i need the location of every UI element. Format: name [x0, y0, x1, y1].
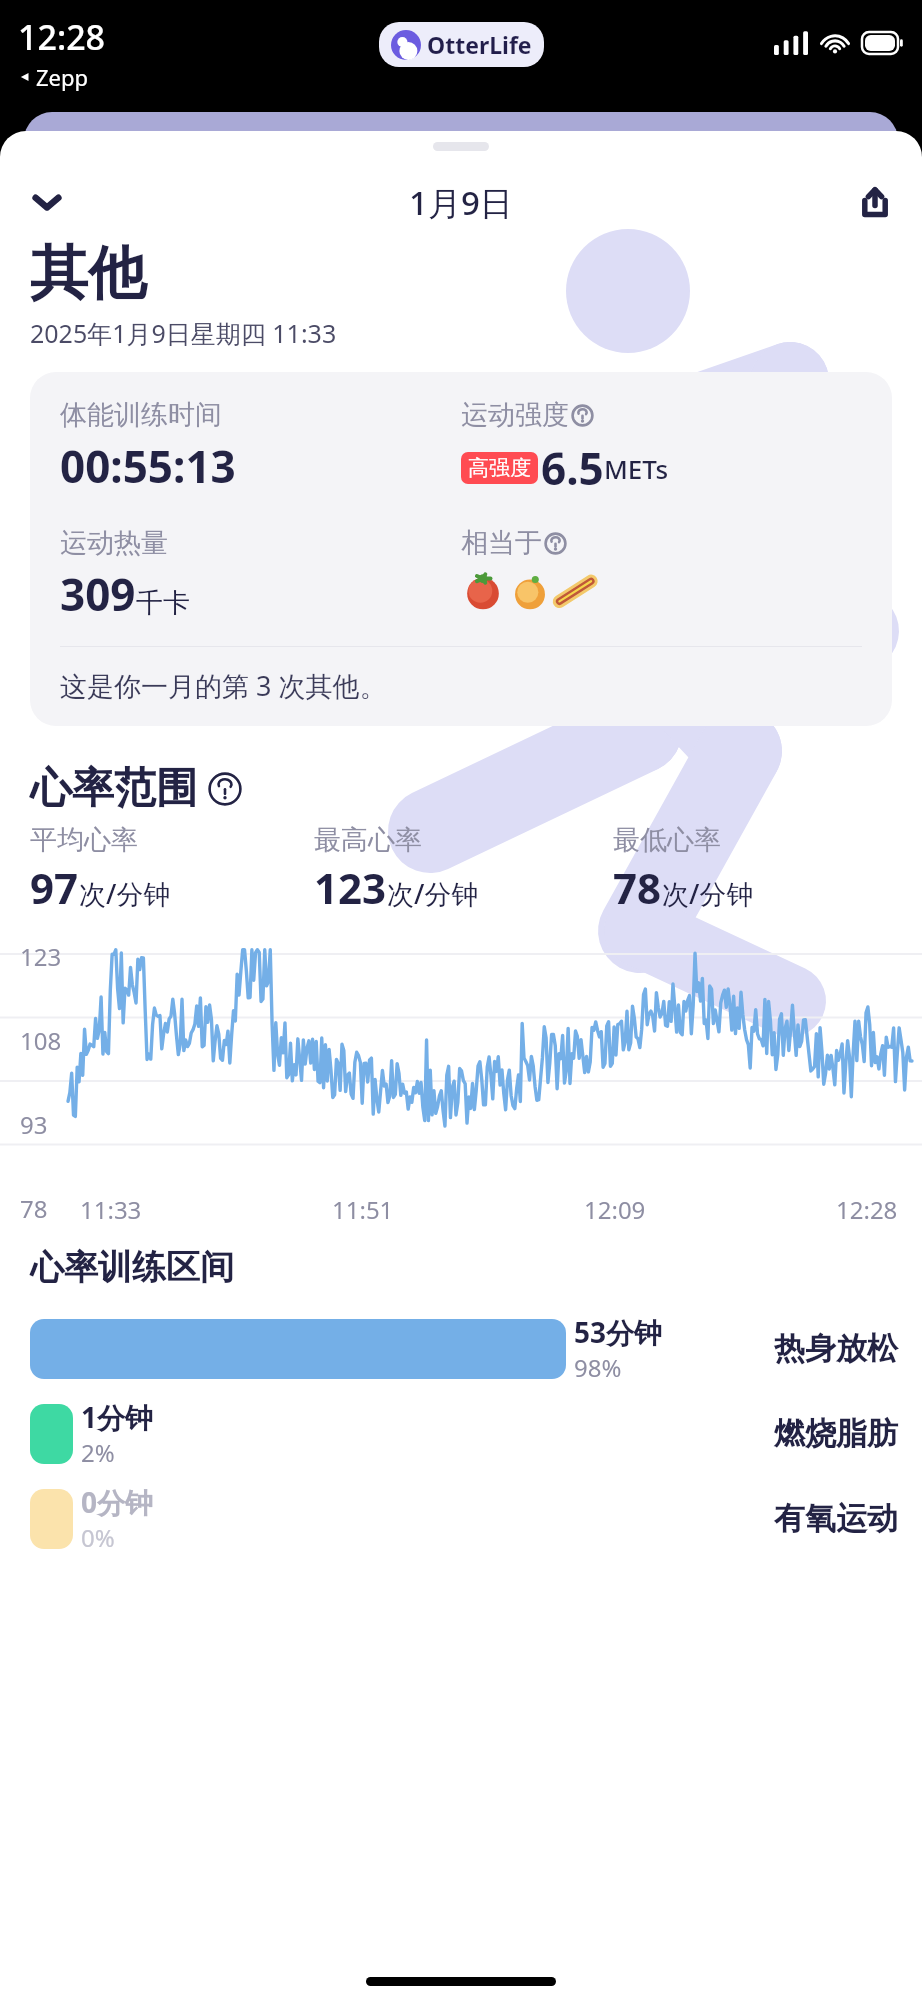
staticText: 12:09 — [584, 1193, 646, 1226]
staticText: 1月9日 — [409, 180, 513, 225]
staticText: 0分钟 — [81, 1483, 154, 1521]
staticText: 0% — [81, 1521, 115, 1554]
staticText: 53分钟 — [574, 1313, 663, 1351]
staticText: 309 — [60, 564, 136, 624]
staticText: 12:28 — [836, 1193, 898, 1226]
staticText: 运动强度 — [461, 398, 569, 432]
staticText: 最低心率 — [613, 823, 721, 857]
staticText: 最高心率 — [314, 823, 422, 857]
staticText: 78 — [613, 859, 662, 916]
button[interactable]: 0分钟 — [30, 1483, 898, 1554]
staticText: 00:55:13 — [60, 436, 236, 496]
staticText: METs — [604, 451, 669, 486]
staticText: 次/分钟 — [662, 875, 754, 912]
staticText: 体能训练时间 — [60, 398, 222, 432]
button[interactable]: Share — [846, 173, 904, 231]
staticText: 97 — [30, 859, 79, 916]
staticText: 123 — [20, 940, 62, 973]
staticText: 其他 — [30, 237, 146, 310]
staticText: 2% — [81, 1436, 115, 1469]
staticText: 燃烧脂肪 — [774, 1414, 898, 1453]
staticText: 2025年1月9日星期四 11:33 — [30, 316, 337, 350]
staticText: 108 — [20, 1024, 62, 1057]
staticText: 热身放松 — [774, 1329, 898, 1368]
staticText: 相当于 — [461, 526, 542, 560]
staticText: OtterLife — [427, 29, 532, 60]
staticText: 1分钟 — [81, 1398, 154, 1436]
staticText: 11:33 — [80, 1193, 142, 1226]
button[interactable]: 53分钟 — [30, 1313, 898, 1384]
staticText: 心率训练区间 — [30, 1246, 234, 1289]
staticText: 平均心率 — [30, 823, 138, 857]
staticText: 次/分钟 — [387, 875, 479, 912]
staticText: Zepp — [36, 62, 89, 92]
staticText: 心率范围 — [30, 762, 198, 815]
staticText: 93 — [20, 1108, 48, 1141]
staticText: 次/分钟 — [79, 875, 171, 912]
button[interactable]: 1分钟 — [30, 1398, 898, 1469]
staticText: 12:28 — [18, 14, 106, 60]
button[interactable]: Collapse — [18, 173, 76, 231]
staticText: 78 — [20, 1192, 48, 1225]
staticText: 这是你一月的第 3 次其他。 — [60, 667, 387, 704]
staticText: 有氧运动 — [774, 1499, 898, 1538]
staticText: 高强度 — [468, 455, 531, 481]
staticText: 6.5 — [541, 438, 604, 498]
staticText: 千卡 — [136, 586, 190, 620]
staticText: 11:51 — [332, 1193, 394, 1226]
staticText: 98% — [574, 1351, 622, 1384]
staticText: 123 — [314, 859, 387, 916]
staticText: 运动热量 — [60, 526, 168, 560]
